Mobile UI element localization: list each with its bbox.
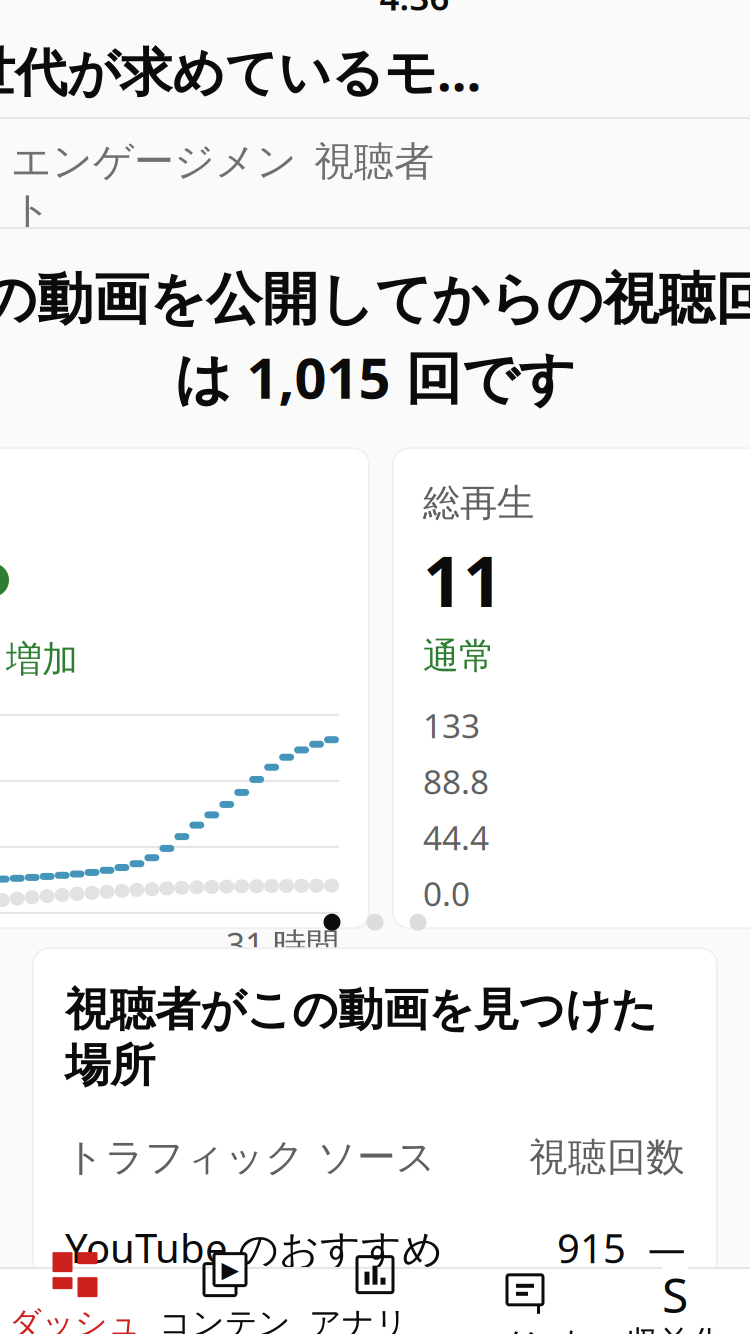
staticText: ダッシュボード bbox=[9, 1304, 141, 1334]
staticText: 133 bbox=[423, 703, 480, 747]
staticText: 0.0 bbox=[423, 871, 470, 915]
staticText: 視聴者 bbox=[314, 137, 434, 186]
staticText: 915 bbox=[557, 1221, 626, 1274]
staticText: 11 bbox=[423, 534, 503, 626]
button[interactable]: YouTube のおすすめ bbox=[65, 1181, 685, 1277]
staticText: 31 時間 bbox=[226, 922, 339, 966]
staticText: トラフィック ソース bbox=[65, 1133, 436, 1181]
staticText: 収益化 bbox=[627, 1323, 723, 1334]
staticText: 通常 bbox=[423, 634, 495, 678]
staticText: 通常より 835 増加 bbox=[0, 634, 78, 682]
staticText: 視聴回数 bbox=[529, 1133, 685, 1181]
staticText: YouTube のおすすめ bbox=[65, 1221, 443, 1274]
staticText: エンゲージメント bbox=[11, 137, 297, 235]
staticText: 44.4 bbox=[423, 815, 489, 859]
staticText: 氷河期世代が求めているモ… bbox=[0, 36, 481, 106]
staticText: S bbox=[662, 1262, 688, 1326]
staticText: アナリティクス bbox=[309, 1304, 441, 1334]
staticText: 視聴者がこの動画を見つけた場所 bbox=[65, 982, 657, 1094]
staticText: この動画を公開してからの視聴回数 bbox=[0, 265, 750, 334]
button[interactable]: 視聴者 bbox=[299, 101, 449, 245]
button[interactable]: エンゲージメント bbox=[9, 101, 299, 245]
button[interactable]: アナリティクス bbox=[300, 1270, 450, 1334]
staticText: ▶ bbox=[221, 1257, 238, 1282]
staticText: 88.8 bbox=[423, 759, 489, 803]
button[interactable]: リーチ bbox=[0, 101, 9, 245]
button[interactable]: コメント bbox=[450, 1270, 600, 1334]
staticText: 総再生 bbox=[423, 480, 534, 526]
button[interactable]: ダッシュボード bbox=[0, 1270, 150, 1334]
staticText: ↑ bbox=[0, 563, 4, 597]
button[interactable]: ▶ bbox=[150, 1270, 300, 1334]
staticText: は 1,015 回です bbox=[174, 340, 575, 414]
staticText: — bbox=[648, 1223, 685, 1272]
staticText: コンテンツ bbox=[159, 1304, 291, 1334]
staticText: コメント bbox=[459, 1323, 591, 1334]
button[interactable]: S bbox=[600, 1270, 750, 1334]
staticText: 4:36 bbox=[379, 0, 449, 20]
